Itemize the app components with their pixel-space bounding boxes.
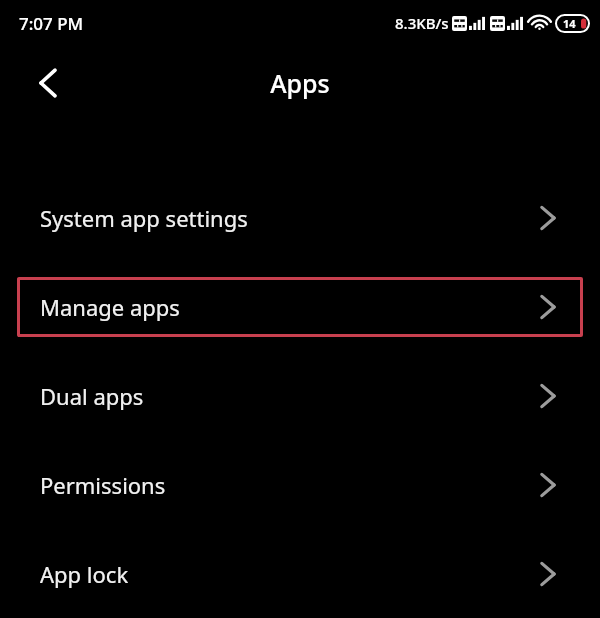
button[interactable]: Dual apps [0,351,600,440]
staticText: Manage apps [40,292,534,322]
staticText: 8.3KB/s [395,13,449,33]
staticText: App lock [40,559,534,589]
button[interactable]: Permissions [0,440,600,529]
staticText: Dual apps [40,381,534,411]
staticText: 14 [563,16,576,31]
staticText: System app settings [40,203,534,233]
button[interactable]: Manage apps [17,277,583,337]
button[interactable]: App lock [0,529,600,618]
staticText: Apps [270,66,330,100]
button[interactable]: Back [22,57,74,109]
staticText: 7:07 PM [19,12,84,35]
staticText: Permissions [40,470,534,500]
button[interactable]: System app settings [0,173,600,262]
